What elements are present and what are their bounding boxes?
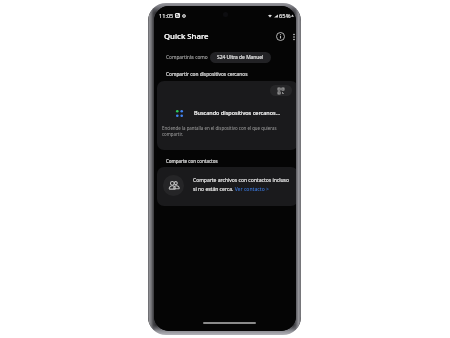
button[interactable]: Comparte archivos con contactos incluso … bbox=[157, 167, 296, 206]
staticText: S24 Ultra de Manuel bbox=[217, 54, 264, 61]
staticText: Compartir con dispositivos cercanos bbox=[166, 71, 248, 78]
staticText: Quick Share bbox=[164, 31, 209, 42]
staticText: Comparte con contactos bbox=[166, 158, 218, 164]
button[interactable]: Share with QR code bbox=[270, 85, 292, 96]
staticText: Enciende la pantalla en el dispositivo c… bbox=[162, 125, 280, 138]
staticText: 11:05 bbox=[159, 12, 174, 20]
staticText: Comparte archivos con contactos incluso … bbox=[193, 177, 293, 193]
button[interactable]: Information bbox=[273, 29, 288, 44]
staticText: Compartirás como bbox=[166, 54, 208, 61]
staticText: Buscando dispositivos cercanos... bbox=[194, 109, 281, 116]
button[interactable]: More options bbox=[286, 29, 296, 44]
button[interactable]: S24 Ultra de Manuel bbox=[210, 52, 271, 63]
staticText: 65% bbox=[279, 12, 291, 20]
